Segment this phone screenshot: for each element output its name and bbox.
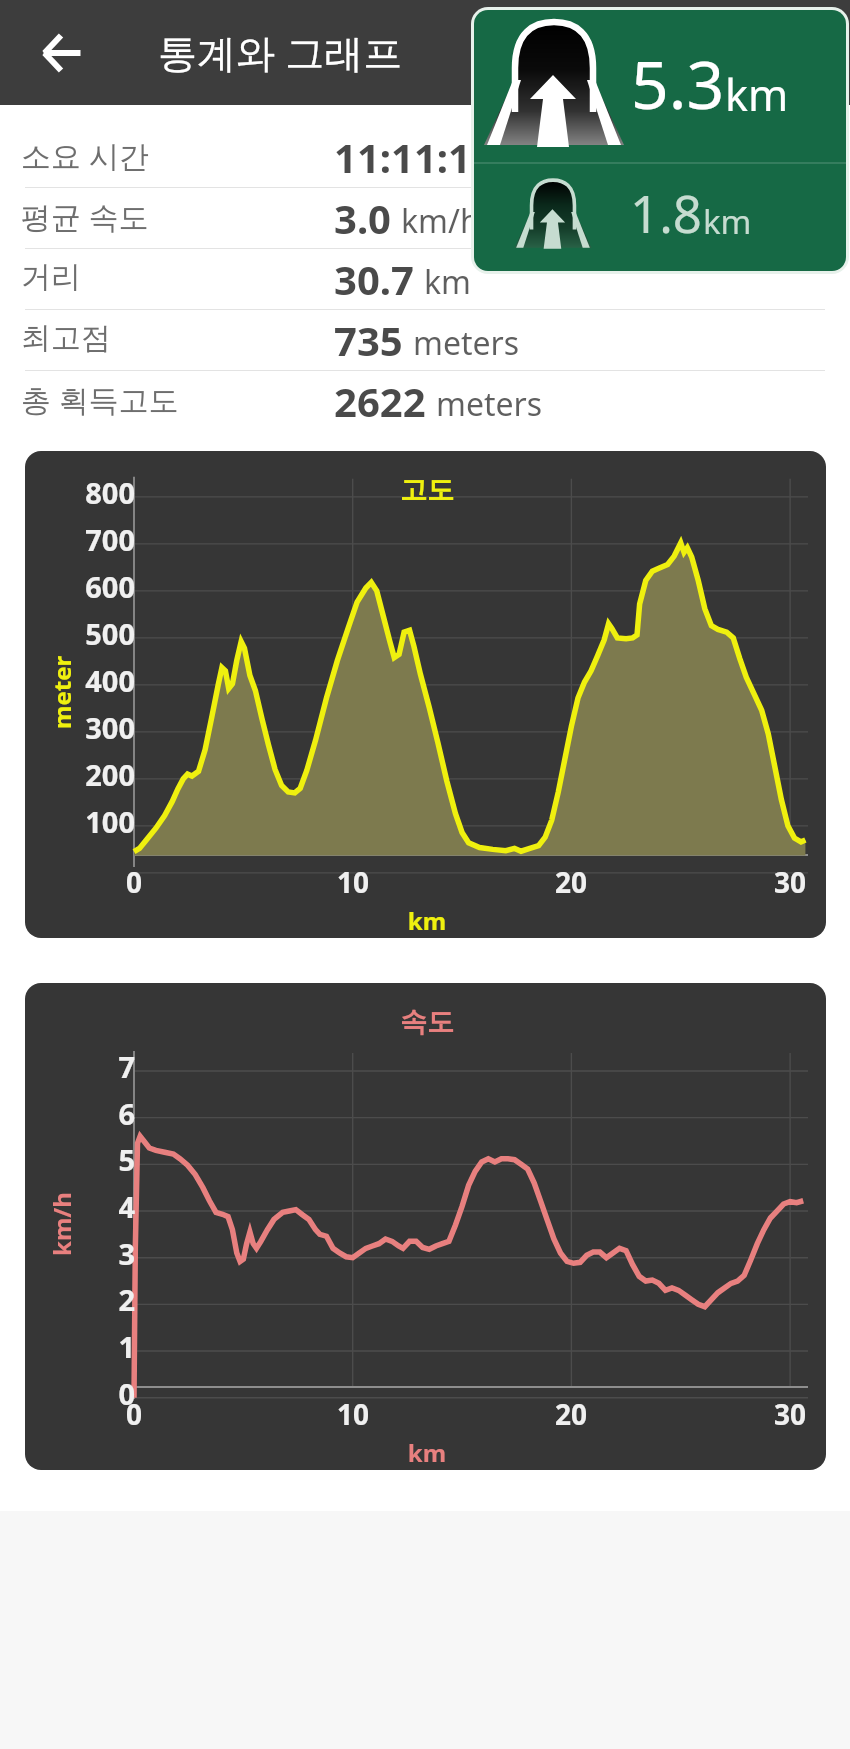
staticText: 100	[79, 802, 135, 841]
button[interactable]: Tunnel ahead 5.3 km	[474, 10, 846, 271]
staticText: 5.3	[631, 38, 725, 128]
button[interactable]: Back	[28, 19, 96, 87]
staticText: 10	[323, 1395, 383, 1433]
staticText: 800	[79, 473, 135, 512]
staticText: 최고점	[21, 319, 111, 357]
staticText: km/h	[45, 1192, 75, 1256]
staticText: 20	[541, 863, 601, 901]
staticText: 6	[79, 1094, 135, 1133]
staticText: meter	[45, 655, 75, 729]
staticText: km	[399, 1436, 455, 1469]
staticText: 2	[79, 1280, 135, 1319]
staticText: 200	[79, 755, 135, 794]
staticText: 평균 속도	[21, 196, 149, 237]
staticText: km/h	[401, 199, 480, 243]
staticText: 0	[104, 863, 164, 901]
staticText: 400	[79, 661, 135, 700]
staticText: 30.7	[334, 252, 414, 306]
staticText: 1.8	[630, 178, 703, 247]
staticText: 거리	[21, 258, 81, 296]
staticText: 11:11:11	[334, 130, 494, 184]
staticText: 0	[79, 1374, 135, 1413]
staticText: 총 획득고도	[21, 379, 179, 420]
staticText: 30	[760, 1395, 820, 1433]
staticText: 1	[79, 1327, 135, 1366]
staticText: km	[424, 260, 472, 304]
staticText: 소요 시간	[21, 135, 149, 176]
staticText: 고도	[399, 473, 455, 507]
staticText: 600	[79, 567, 135, 606]
staticText: 속도	[399, 1005, 455, 1039]
staticText: 20	[541, 1395, 601, 1433]
staticText: meters	[436, 382, 543, 426]
staticText: 2622	[334, 374, 426, 428]
staticText: km	[703, 199, 752, 244]
staticText: 3	[79, 1234, 135, 1273]
staticText: 30	[760, 863, 820, 901]
staticText: 700	[79, 520, 135, 559]
staticText: km	[399, 904, 455, 937]
staticText: 7	[79, 1047, 135, 1086]
staticText: 4	[79, 1187, 135, 1226]
staticText: 300	[79, 708, 135, 747]
staticText: 500	[79, 614, 135, 653]
staticText: meters	[413, 321, 520, 365]
staticText: km	[725, 65, 789, 124]
staticText: 5	[79, 1140, 135, 1179]
staticText: 735	[334, 313, 403, 367]
staticText: 3.0	[334, 191, 391, 245]
staticText: 10	[323, 863, 383, 901]
staticText: 통계와 그래프	[158, 25, 403, 78]
staticText: 0	[104, 1395, 164, 1433]
